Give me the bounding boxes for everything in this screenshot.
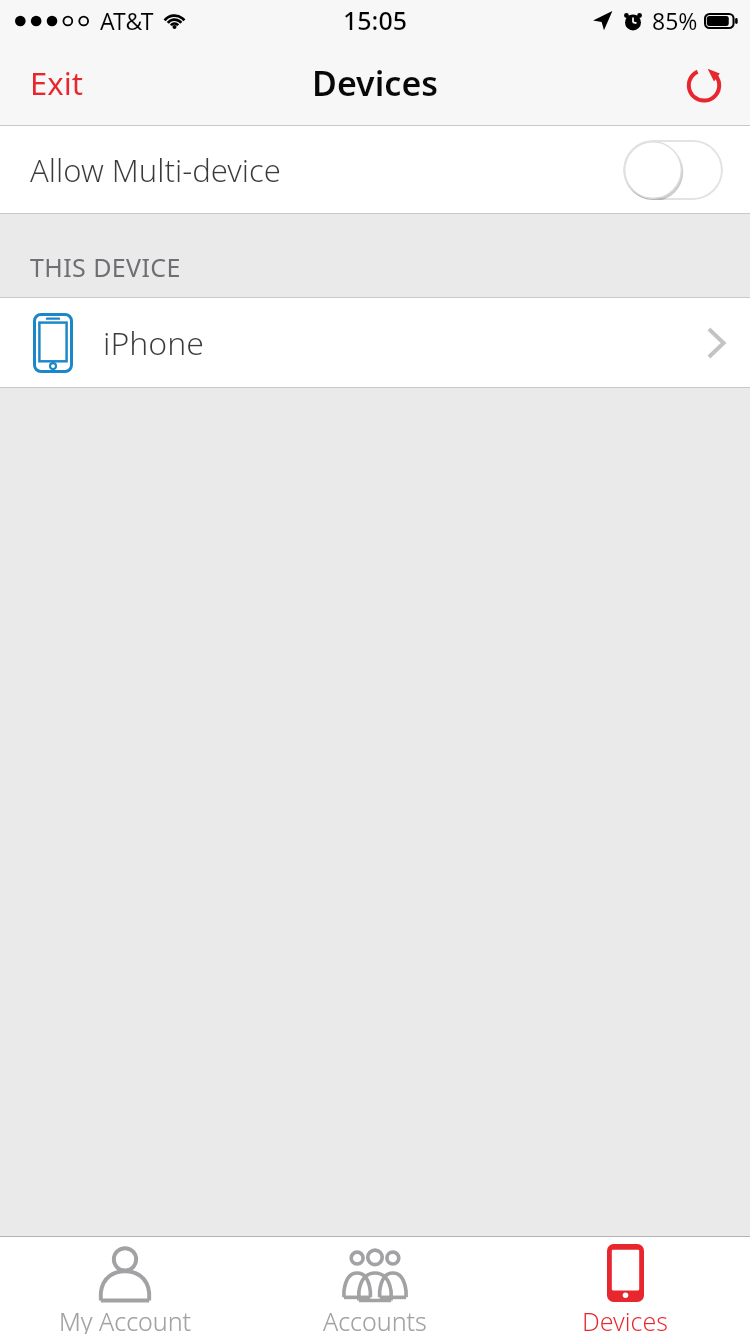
button[interactable]: Allow Multi-device toggle (623, 140, 723, 200)
button[interactable]: Exit (10, 50, 103, 116)
staticText: Exit (30, 62, 83, 104)
staticText: Allow Multi-device (30, 149, 281, 191)
staticText: Accounts (323, 1304, 427, 1334)
staticText: iPhone (103, 321, 204, 365)
button[interactable]: Refresh (668, 47, 740, 119)
button[interactable]: My Account (0, 1236, 250, 1334)
staticText: AT&T (100, 5, 154, 36)
button[interactable]: Devices (500, 1236, 750, 1334)
button[interactable]: Allow Multi-device (0, 126, 750, 213)
staticText: 15:05 (343, 3, 408, 37)
button[interactable]: iPhone (0, 298, 750, 388)
button[interactable]: Accounts (250, 1236, 500, 1334)
staticText: Devices (312, 60, 439, 106)
staticText: 85% (652, 5, 698, 36)
staticText: Devices (582, 1304, 669, 1334)
staticText: THIS DEVICE (30, 250, 181, 284)
staticText: My Account (59, 1304, 192, 1334)
